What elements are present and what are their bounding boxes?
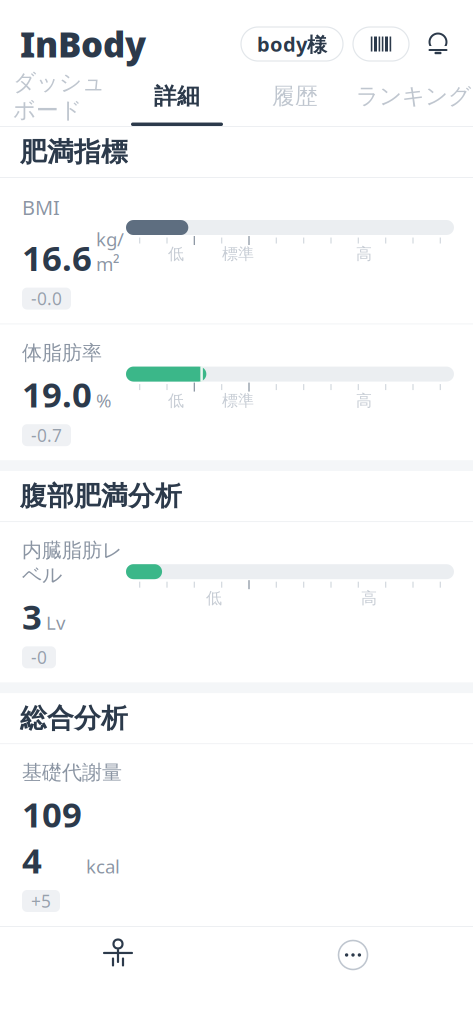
- staticText: Lv: [46, 610, 65, 635]
- button[interactable]: 通知: [423, 29, 453, 59]
- staticText: 低: [206, 588, 222, 608]
- staticText: -0: [31, 646, 47, 669]
- staticText: 3: [22, 593, 42, 639]
- staticText: 低: [168, 244, 184, 264]
- staticText: kcal: [86, 854, 120, 879]
- button[interactable]: ランキング: [354, 70, 473, 126]
- staticText: BMI: [22, 194, 60, 221]
- staticText: 標準: [222, 391, 254, 410]
- staticText: 19.0: [22, 371, 92, 417]
- button[interactable]: バーコード: [353, 27, 409, 61]
- staticText: 肥満指標: [20, 136, 128, 168]
- staticText: kg/m²: [96, 227, 124, 276]
- staticText: 高: [356, 391, 372, 410]
- button[interactable]: 詳細: [118, 70, 236, 126]
- button[interactable]: body様: [241, 27, 343, 61]
- staticText: 基礎代謝量: [22, 760, 122, 785]
- staticText: 総合分析: [20, 702, 128, 735]
- staticText: 詳細: [154, 82, 200, 110]
- button[interactable]: その他: [333, 935, 373, 975]
- staticText: body様: [257, 31, 327, 57]
- staticText: %: [96, 388, 112, 413]
- staticText: -0.7: [31, 424, 62, 447]
- staticText: +5: [31, 889, 51, 912]
- button[interactable]: 身体: [98, 935, 138, 975]
- button[interactable]: 履歴: [236, 70, 354, 126]
- staticText: ダッシュボード: [13, 68, 105, 124]
- staticText: InBody: [20, 21, 146, 67]
- staticText: 高: [361, 588, 377, 608]
- staticText: 標準: [222, 244, 254, 264]
- staticText: 内臓脂肪レベル: [22, 538, 122, 587]
- staticText: 1094: [22, 791, 82, 883]
- staticText: 低: [168, 391, 184, 410]
- staticText: -0.0: [31, 287, 62, 310]
- staticText: 高: [356, 244, 372, 264]
- staticText: 腹部肥満分析: [20, 480, 182, 513]
- staticText: ランキング: [356, 82, 471, 110]
- staticText: 体脂肪率: [22, 341, 102, 365]
- staticText: 履歴: [272, 82, 318, 110]
- staticText: 16.6: [22, 234, 92, 280]
- button[interactable]: ダッシュボード: [0, 70, 118, 126]
